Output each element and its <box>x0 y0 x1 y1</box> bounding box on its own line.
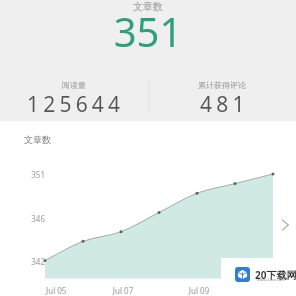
staticText: Jul 05 <box>46 285 74 296</box>
staticText: Jul 09 <box>185 285 213 296</box>
staticText: 累计获得评论 <box>198 80 246 90</box>
staticText: 481 <box>200 90 249 119</box>
staticText: 文章数 <box>24 134 51 145</box>
staticText: 351 <box>0 4 296 58</box>
staticText: 342 <box>20 256 45 267</box>
staticText: 125644 <box>27 90 125 119</box>
staticText: www.20xz.com <box>257 277 286 282</box>
staticText: 文章数 <box>0 0 296 13</box>
staticText: 20下载网 <box>255 268 296 282</box>
staticText: 351 <box>20 169 45 180</box>
staticText: 阅读量 <box>62 80 86 90</box>
button[interactable]: 累计获得评论 <box>148 80 296 121</box>
button[interactable]: Next chart <box>272 213 296 237</box>
staticText: 346 <box>20 213 45 224</box>
button[interactable]: 阅读量 <box>0 80 148 121</box>
staticText: Jul 07 <box>109 285 137 296</box>
